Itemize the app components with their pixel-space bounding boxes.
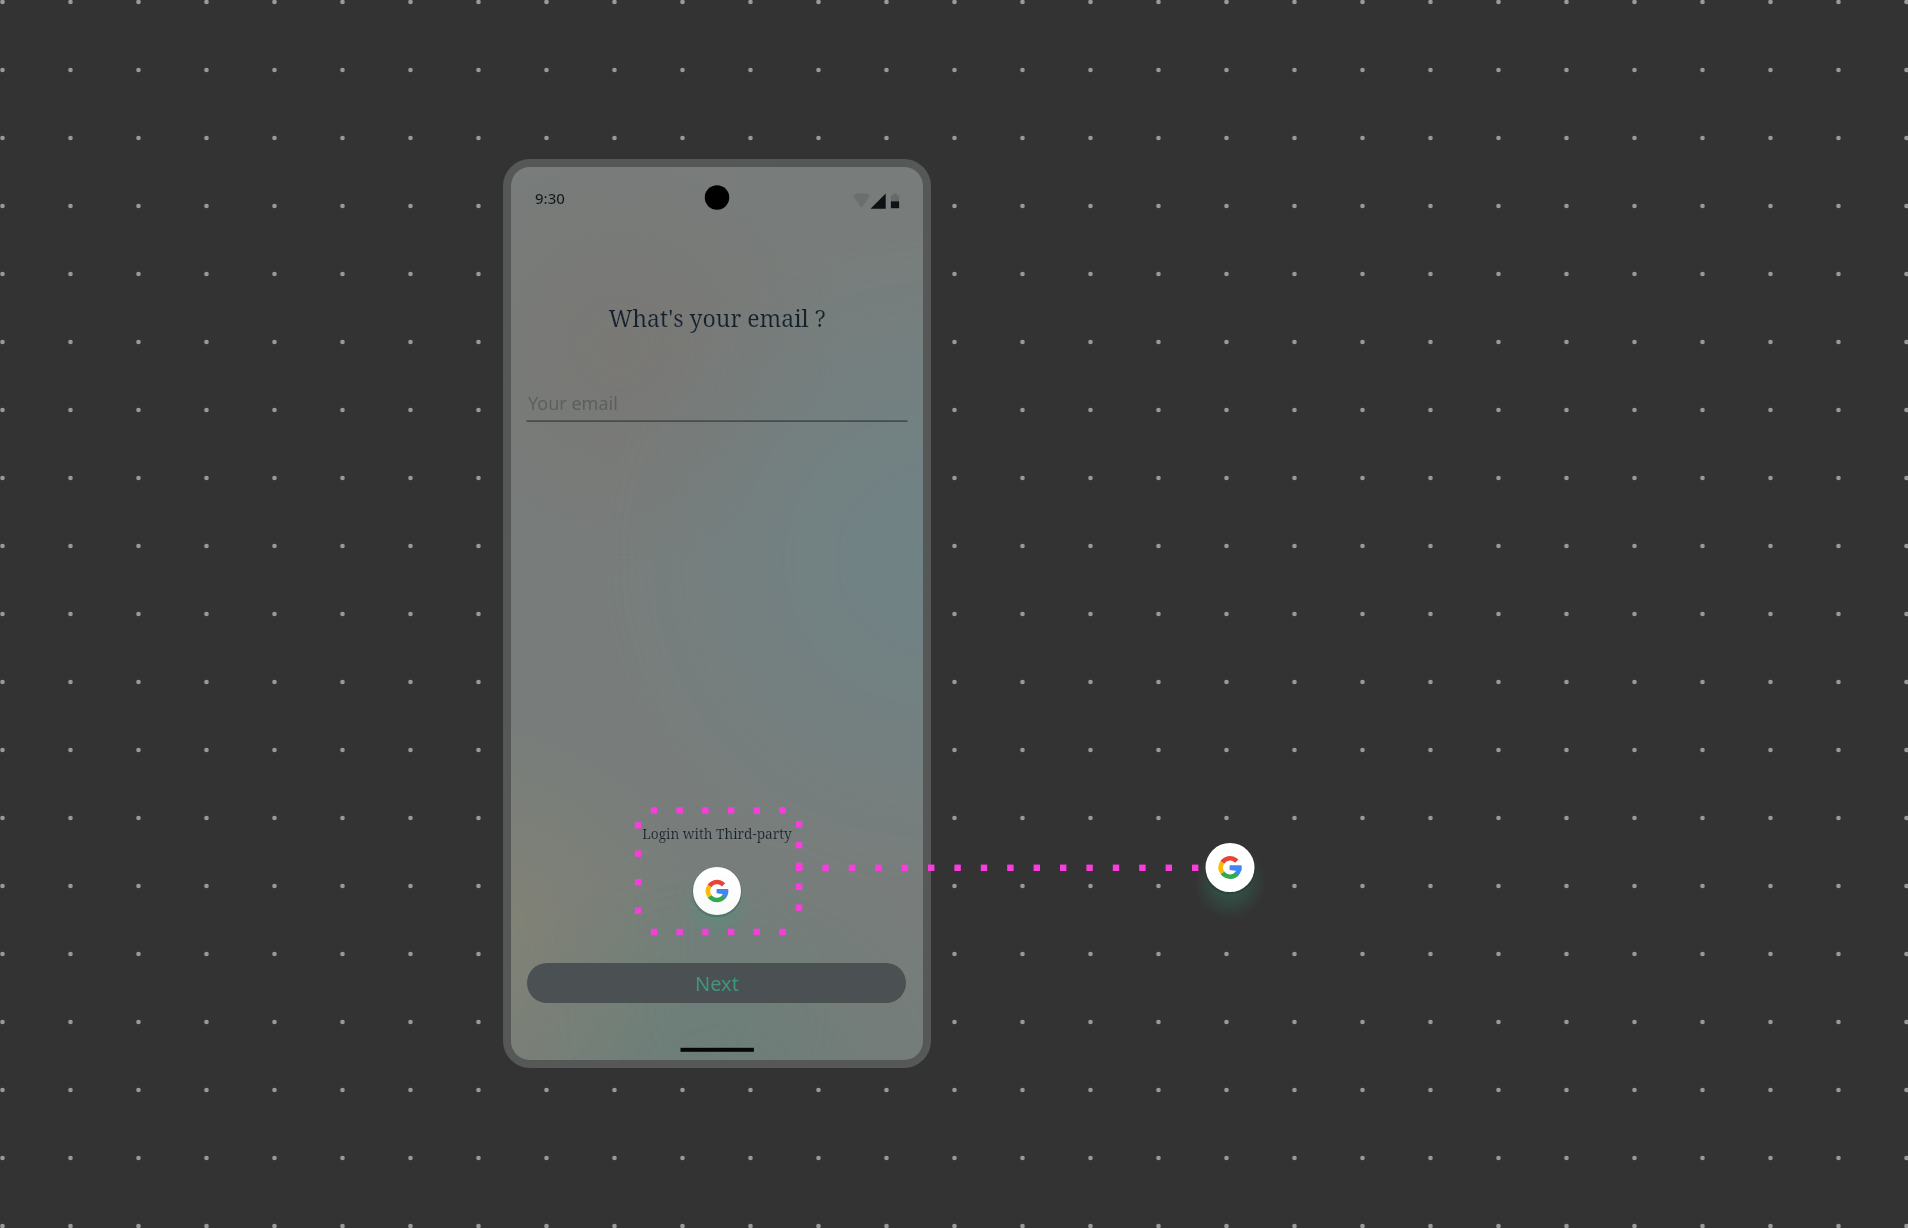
- staticText: Your email: [528, 391, 618, 416]
- staticText: 9:30: [535, 188, 565, 208]
- staticText: Login with Third-party: [511, 824, 923, 1060]
- button[interactable]: Next: [527, 963, 906, 1003]
- staticText: Next: [695, 970, 739, 997]
- button[interactable]: Sign in with Google: [693, 867, 741, 915]
- button[interactable]: Your email: [527, 381, 908, 423]
- button[interactable]: Sign in with Google: [1206, 843, 1255, 892]
- staticText: What's your email ?: [511, 302, 923, 1060]
